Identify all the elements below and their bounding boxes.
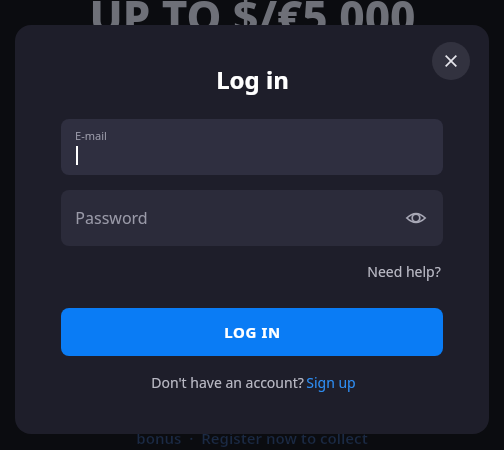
button[interactable]: LOG IN [61,308,443,356]
button[interactable]: Sign up [306,373,356,392]
button[interactable]: E-mail [61,119,443,175]
staticText: Don't have an account? [149,373,306,392]
button[interactable]: Password [61,190,443,246]
staticText: bonus · Register now to collect [136,428,368,448]
staticText: Sign up [306,373,356,392]
button[interactable]: Need help? [365,260,443,283]
staticText: Log in [216,63,289,96]
staticText: E-mail [75,128,107,143]
staticText: LOG IN [224,322,281,342]
staticText: Password [75,207,148,229]
button[interactable]: Close [432,42,470,80]
staticText: UP TO $/€5 000 [89,0,416,46]
button[interactable]: Show password [397,199,435,237]
staticText: Need help? [367,262,441,281]
